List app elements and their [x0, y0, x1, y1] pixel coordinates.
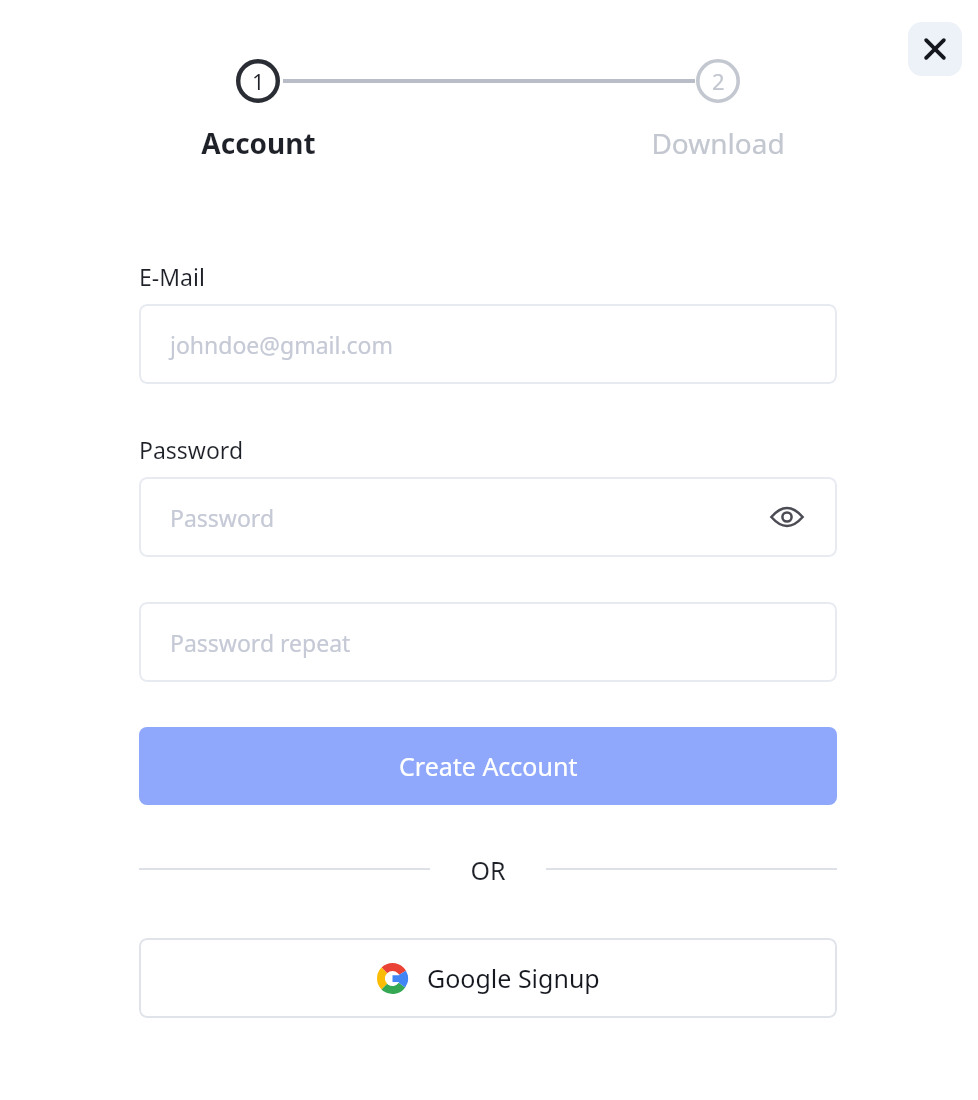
button[interactable]: Google Signup	[139, 938, 837, 1018]
button[interactable]: Create Account	[139, 727, 837, 805]
button[interactable]: 1	[236, 59, 280, 103]
staticText: OR	[470, 853, 506, 887]
button[interactable]: Password	[139, 477, 837, 557]
button[interactable]: 2	[696, 59, 740, 103]
button[interactable]: Password repeat	[139, 602, 837, 682]
staticText: 1	[252, 66, 265, 96]
staticText: 2	[712, 66, 725, 96]
staticText: E-Mail	[139, 261, 205, 292]
staticText: Password	[170, 502, 275, 533]
button[interactable]: Download	[610, 124, 826, 162]
staticText: Password repeat	[170, 627, 351, 658]
button[interactable]: Close	[908, 22, 962, 76]
staticText: Download	[651, 124, 785, 162]
button[interactable]: johndoe@gmail.com	[139, 304, 837, 384]
button[interactable]: Show password	[769, 499, 805, 535]
staticText: Google Signup	[427, 961, 600, 995]
button[interactable]: Account	[150, 124, 366, 162]
staticText: Create Account	[399, 749, 578, 783]
staticText: Password	[139, 434, 244, 465]
staticText: Account	[201, 124, 316, 162]
staticText: johndoe@gmail.com	[170, 329, 394, 360]
